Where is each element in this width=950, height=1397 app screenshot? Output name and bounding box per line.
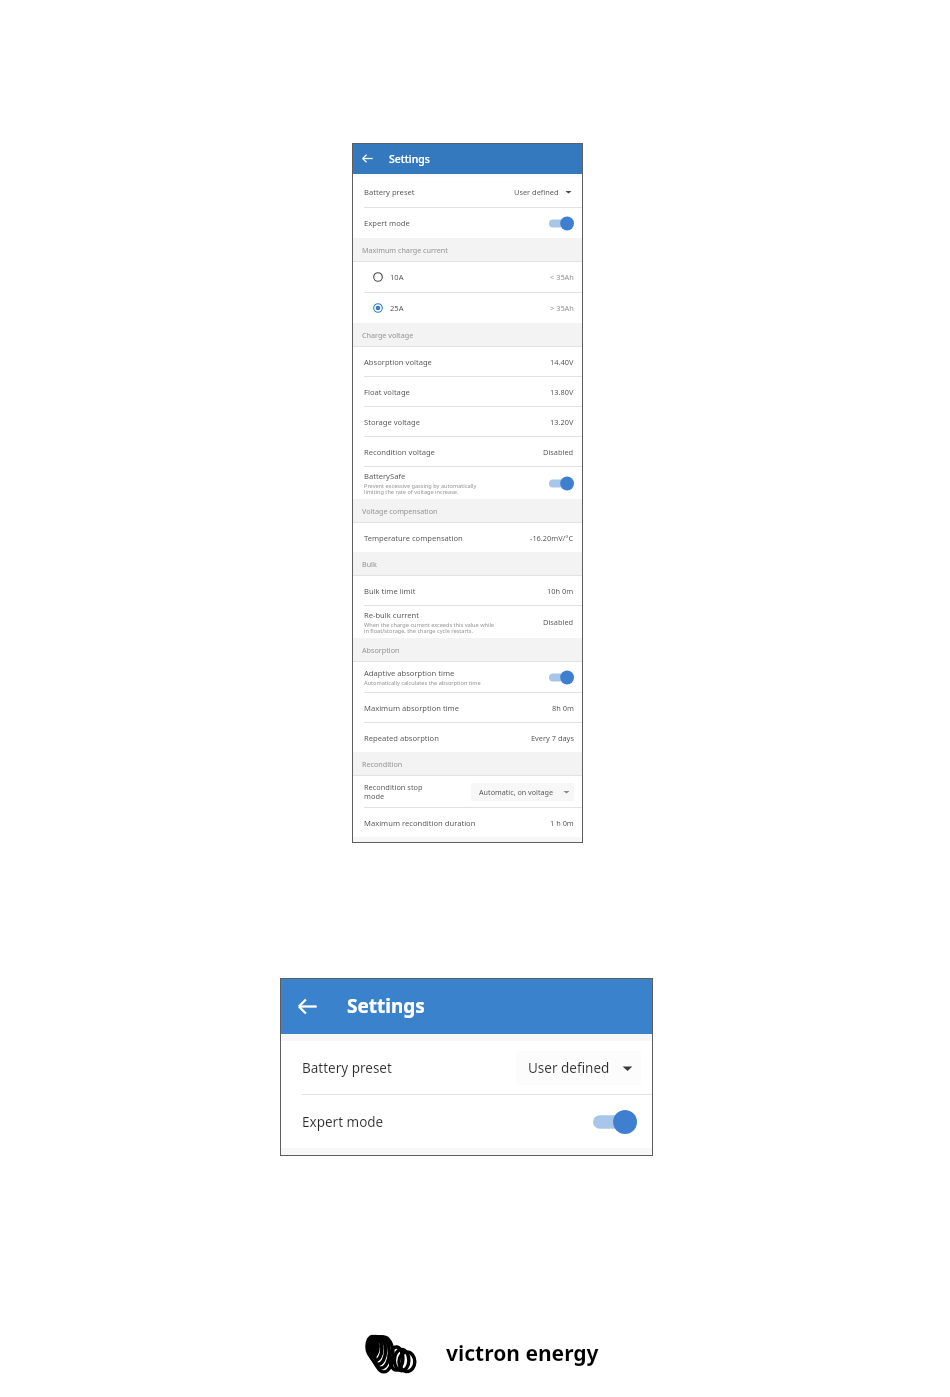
staticText: BatterySafe bbox=[364, 471, 406, 481]
button[interactable]: Automatic, on voltage bbox=[471, 783, 574, 801]
staticText: Re-bulk current bbox=[364, 610, 419, 620]
button[interactable]: Battery preset bbox=[280, 1041, 653, 1094]
button[interactable]: Bulk time limit bbox=[352, 576, 583, 605]
staticText: Maximum charge current bbox=[362, 245, 448, 255]
staticText: User defined bbox=[528, 1059, 610, 1077]
staticText: Disabled bbox=[543, 447, 574, 457]
staticText: Charge voltage bbox=[362, 330, 414, 340]
button[interactable]: User defined bbox=[508, 187, 574, 197]
staticText: Every 7 days bbox=[531, 733, 574, 743]
staticText: Settings bbox=[347, 993, 425, 1019]
button[interactable] bbox=[593, 1109, 637, 1135]
staticText: 1 h 0m bbox=[550, 818, 574, 828]
staticText: -16.20mV/°C bbox=[530, 533, 574, 543]
staticText: Repeated absorption bbox=[364, 733, 439, 743]
staticText: Disabled bbox=[543, 617, 574, 627]
staticText: Recondition voltage bbox=[364, 447, 435, 457]
staticText: Temperature compensation bbox=[364, 533, 463, 543]
button[interactable] bbox=[549, 476, 574, 491]
staticText: Automatically calculates the absorption … bbox=[364, 679, 481, 687]
button[interactable]: User defined bbox=[516, 1051, 641, 1085]
button[interactable]: Back bbox=[360, 151, 375, 166]
staticText: Expert mode bbox=[302, 1113, 384, 1131]
staticText: Battery preset bbox=[302, 1059, 392, 1077]
button[interactable]: 10A bbox=[352, 262, 583, 292]
button[interactable]: Maximum absorption time bbox=[352, 693, 583, 722]
staticText: Maximum recondition duration bbox=[364, 818, 476, 828]
staticText: Recondition bbox=[362, 759, 403, 769]
button[interactable]: 25A bbox=[352, 293, 583, 323]
staticText: 13.80V bbox=[550, 387, 574, 397]
staticText: User defined bbox=[514, 187, 559, 197]
button[interactable]: Battery preset bbox=[352, 177, 583, 207]
staticText: < 35Ah bbox=[550, 272, 574, 282]
staticText: 10h 0m bbox=[547, 586, 574, 596]
staticText: Absorption voltage bbox=[364, 357, 432, 367]
staticText: > 35Ah bbox=[550, 303, 574, 313]
staticText: When the charge current exceeds this val… bbox=[364, 621, 495, 635]
button[interactable]: Recondition voltage bbox=[352, 437, 583, 466]
staticText: Storage voltage bbox=[364, 417, 421, 427]
staticText: Voltage compensation bbox=[362, 506, 438, 516]
button[interactable]: Adaptive absorption time bbox=[352, 662, 583, 692]
staticText: 13.20V bbox=[550, 417, 574, 427]
button[interactable]: BatterySafe bbox=[352, 467, 583, 499]
button[interactable]: Storage voltage bbox=[352, 407, 583, 436]
staticText: Settings bbox=[389, 152, 430, 166]
staticText: Battery preset bbox=[364, 187, 415, 197]
staticText: Expert mode bbox=[364, 218, 410, 228]
button[interactable]: Float voltage bbox=[352, 377, 583, 406]
staticText: Prevent excessive gassing by automatical… bbox=[364, 482, 477, 496]
staticText: 8h 0m bbox=[552, 703, 574, 713]
staticText: 14.40V bbox=[550, 357, 574, 367]
button[interactable]: Maximum recondition duration bbox=[352, 808, 583, 837]
staticText: Float voltage bbox=[364, 387, 410, 397]
staticText: 10A bbox=[390, 272, 404, 282]
staticText: Automatic, on voltage bbox=[479, 787, 554, 797]
staticText: victron energy bbox=[446, 1339, 599, 1368]
staticText: Absorption bbox=[362, 645, 400, 655]
button[interactable]: Re-bulk current bbox=[352, 606, 583, 638]
button[interactable]: Temperature compensation bbox=[352, 523, 583, 552]
button[interactable]: Back bbox=[294, 993, 321, 1020]
button[interactable] bbox=[549, 216, 574, 231]
button[interactable]: Recondition stop mode bbox=[352, 776, 583, 807]
staticText: 25A bbox=[390, 303, 404, 313]
staticText: Bulk bbox=[362, 559, 377, 569]
button[interactable]: Absorption voltage bbox=[352, 347, 583, 376]
staticText: Maximum absorption time bbox=[364, 703, 460, 713]
staticText: Recondition stop mode bbox=[364, 782, 423, 801]
button[interactable]: Expert mode bbox=[352, 208, 583, 238]
button[interactable]: Repeated absorption bbox=[352, 723, 583, 752]
button[interactable]: Expert mode bbox=[280, 1095, 653, 1148]
button[interactable] bbox=[549, 670, 574, 685]
staticText: Adaptive absorption time bbox=[364, 668, 455, 678]
staticText: Bulk time limit bbox=[364, 586, 416, 596]
